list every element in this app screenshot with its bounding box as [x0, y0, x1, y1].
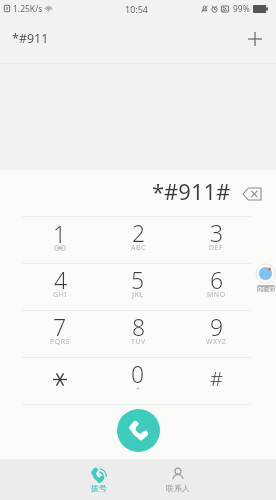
- staticText: WXYZ: [206, 337, 227, 347]
- staticText: #: [210, 365, 223, 392]
- staticText: ABC: [131, 243, 146, 253]
- staticText: JKL: [132, 290, 144, 300]
- button[interactable]: 7: [21, 311, 99, 358]
- staticText: 联系人: [166, 483, 190, 493]
- staticText: 5: [131, 264, 145, 295]
- button[interactable]: 拨号: [59, 459, 138, 493]
- button[interactable]: Call: [117, 409, 160, 452]
- staticText: GHI: [53, 290, 68, 300]
- button[interactable]: Backspace: [239, 183, 265, 205]
- staticText: 01:43: [258, 285, 275, 292]
- staticText: 1: [53, 218, 67, 249]
- staticText: 1.25K/s: [13, 3, 43, 15]
- button[interactable]: Add contact: [242, 26, 268, 52]
- button[interactable]: 0: [99, 358, 177, 405]
- staticText: 拨号: [91, 483, 107, 493]
- button[interactable]: 1: [21, 217, 99, 264]
- button[interactable]: 5: [99, 264, 177, 311]
- staticText: MNO: [207, 290, 226, 300]
- button[interactable]: 3: [177, 217, 255, 264]
- button[interactable]: 联系人: [138, 459, 217, 493]
- staticText: 6: [210, 264, 224, 295]
- button[interactable]: #: [177, 358, 255, 405]
- button[interactable]: 6: [177, 264, 255, 311]
- staticText: *#911: [12, 30, 49, 47]
- button[interactable]: [21, 358, 99, 405]
- button[interactable]: Recording: [256, 264, 275, 283]
- button[interactable]: 2: [99, 217, 177, 264]
- staticText: +: [136, 384, 141, 394]
- staticText: TUV: [131, 337, 146, 347]
- button[interactable]: 9: [177, 311, 255, 358]
- button[interactable]: 8: [99, 311, 177, 358]
- staticText: DEF: [209, 243, 224, 253]
- staticText: 10:54: [125, 3, 149, 15]
- staticText: *#911#: [152, 176, 231, 206]
- staticText: 0: [131, 358, 145, 389]
- staticText: 9: [210, 311, 224, 342]
- staticText: PQRS: [50, 337, 70, 347]
- button[interactable]: 4: [21, 264, 99, 311]
- staticText: 3: [210, 217, 224, 248]
- staticText: 7: [53, 311, 67, 342]
- staticText: 4: [54, 264, 68, 295]
- staticText: 8: [132, 311, 146, 342]
- staticText: 99%: [233, 3, 250, 15]
- staticText: 2: [132, 217, 146, 248]
